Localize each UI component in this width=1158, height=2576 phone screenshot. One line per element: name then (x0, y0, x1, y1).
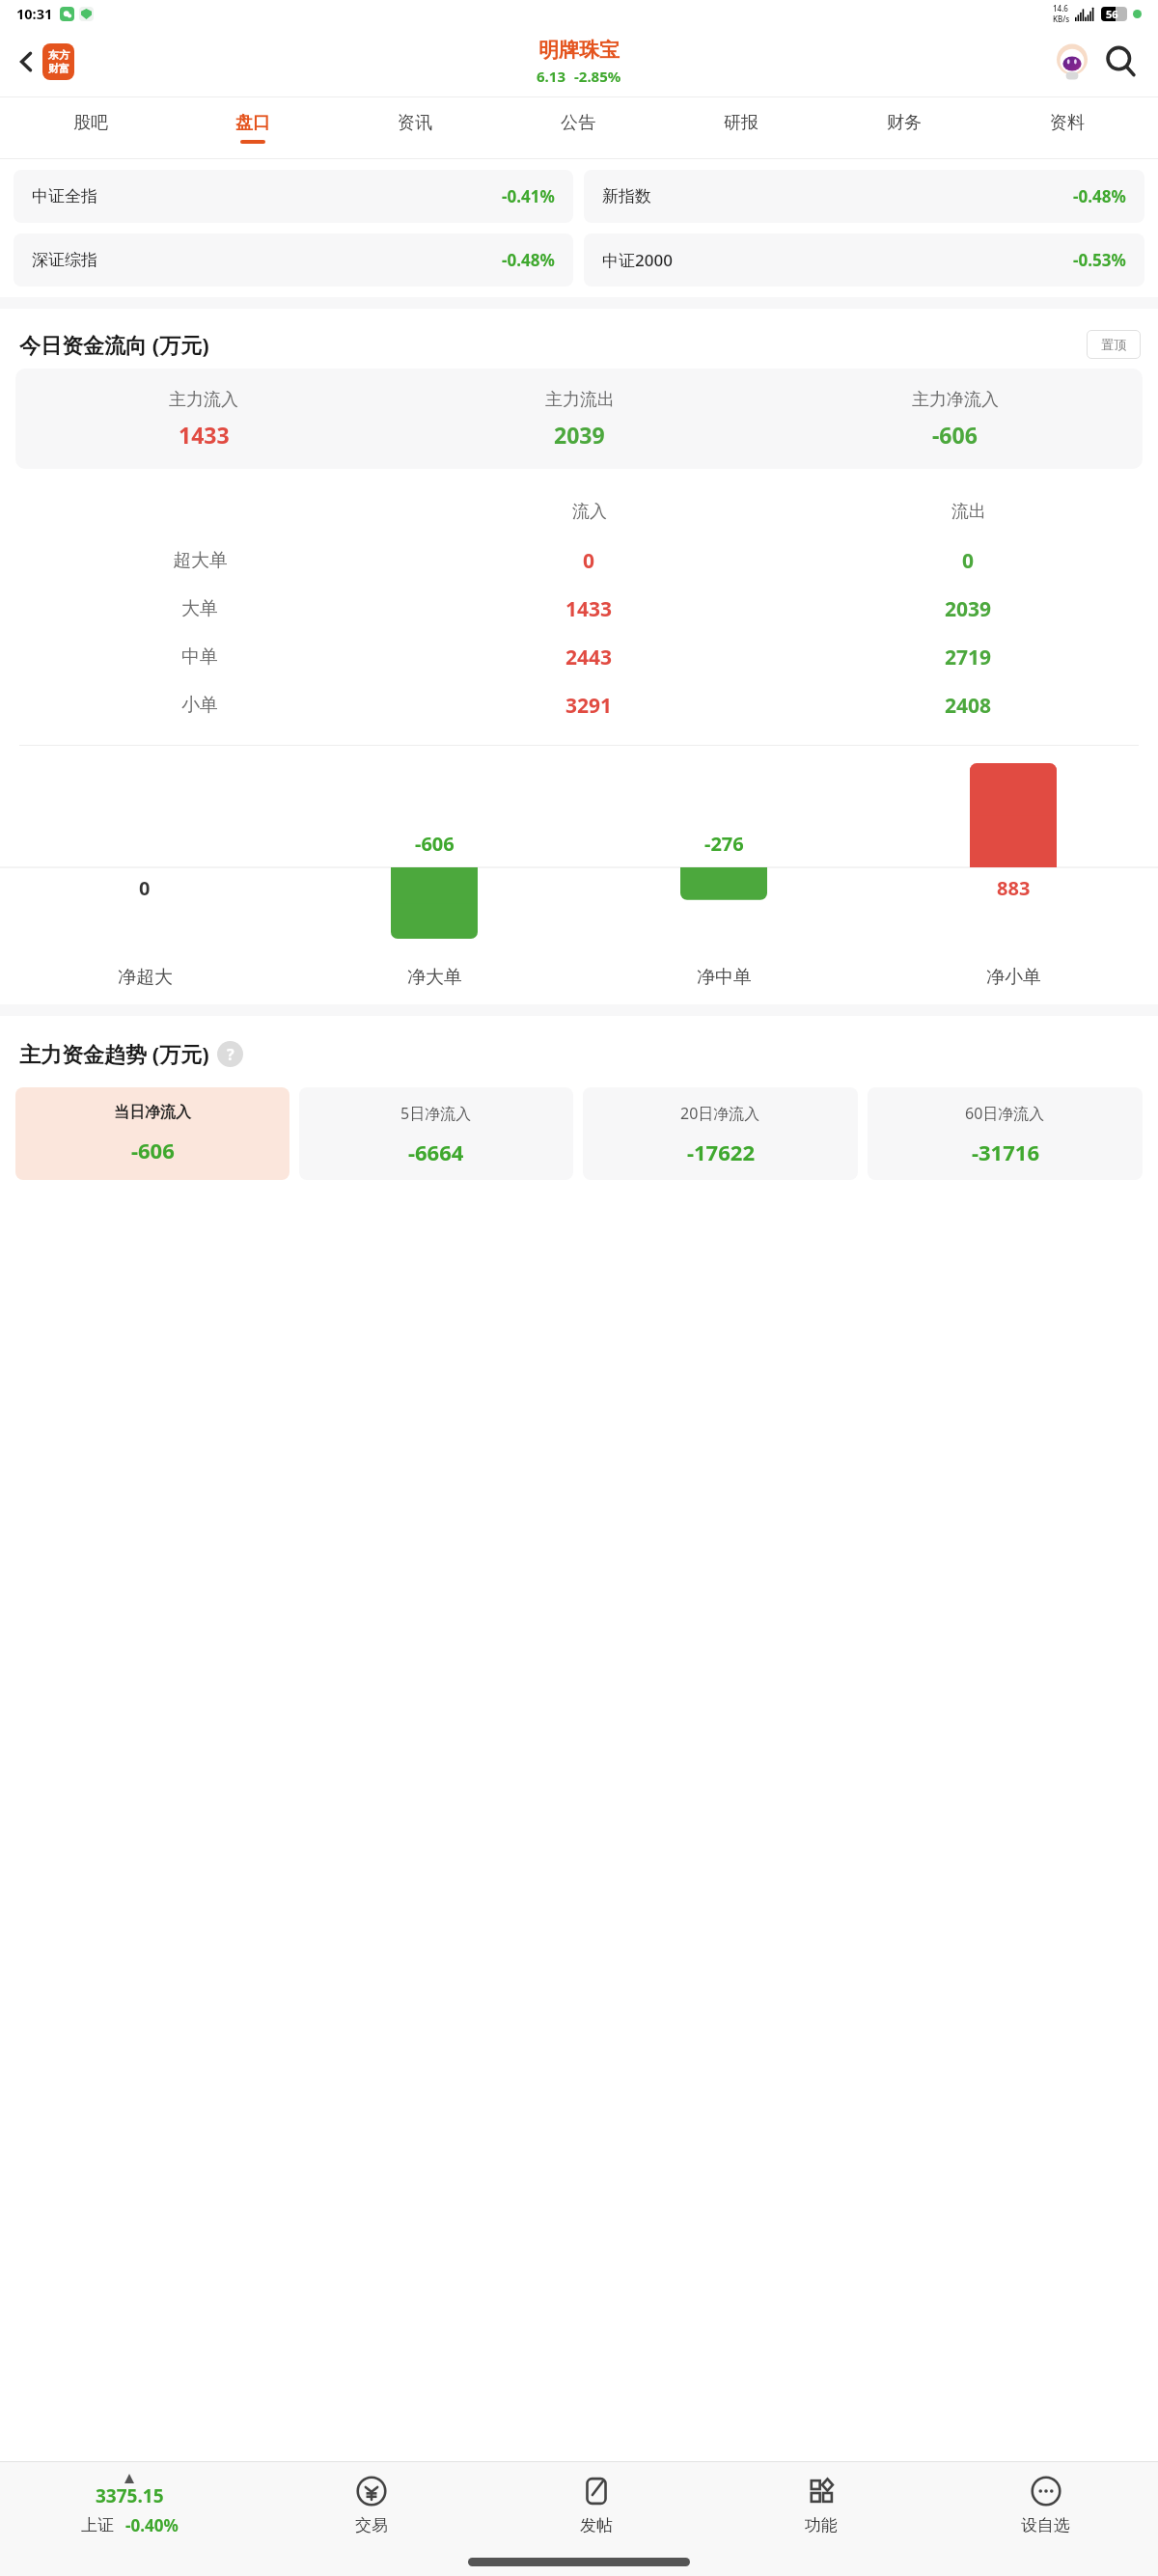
staticText: 新指数 (602, 186, 651, 206)
staticText: -31716 (972, 1137, 1039, 1166)
staticText: 东方 (48, 48, 69, 62)
staticText: 0 (139, 875, 151, 901)
button[interactable]: 资讯 (334, 97, 496, 158)
button[interactable]: Help (217, 1041, 243, 1067)
staticText: 公告 (561, 112, 595, 134)
staticText: 2039 (945, 595, 992, 623)
button[interactable]: 设自选 (933, 2462, 1158, 2547)
staticText: 主力资金趋势 (万元) (19, 1039, 209, 1068)
button[interactable]: 功能 (708, 2462, 933, 2547)
staticText: 2039 (554, 420, 605, 450)
staticText: 2443 (565, 644, 613, 671)
staticText: 6.13 (537, 67, 565, 86)
button[interactable]: 研报 (659, 97, 822, 158)
staticText: 0 (583, 547, 595, 575)
button[interactable]: East Money (42, 43, 74, 80)
staticText: 20日净流入 (680, 1103, 760, 1124)
staticText: 60日净流入 (965, 1103, 1045, 1124)
staticText: KB/s (1053, 14, 1070, 24)
button[interactable]: 当日净流入 (15, 1087, 289, 1180)
staticText: -2.85% (574, 67, 621, 86)
staticText: 中单 (181, 645, 218, 669)
staticText: 2408 (945, 692, 992, 720)
staticText: 1433 (179, 420, 230, 450)
staticText: 883 (997, 875, 1031, 901)
button[interactable]: 中证全指 (32, 170, 555, 223)
staticText: 56 (1106, 7, 1118, 21)
staticText: 资讯 (398, 112, 432, 134)
staticText: 上证 (81, 2515, 114, 2535)
staticText: 今日资金流向 (万元) (19, 330, 209, 359)
staticText: 发帖 (580, 2515, 613, 2535)
button[interactable]: 主力流入 (15, 369, 1143, 469)
staticText: 流入 (572, 501, 607, 523)
staticText: 中证2000 (602, 249, 673, 271)
staticText: 0 (962, 547, 975, 575)
staticText: -0.41% (502, 185, 555, 207)
staticText: 中证全指 (32, 186, 97, 206)
button[interactable]: 股吧 (10, 97, 172, 158)
button[interactable]: AI Assistant (1050, 40, 1094, 84)
button[interactable]: Search (1098, 39, 1144, 85)
staticText: 流出 (951, 501, 986, 523)
button[interactable]: 置顶 (1087, 330, 1141, 359)
staticText: 研报 (724, 112, 758, 134)
button[interactable]: 交易 (259, 2462, 483, 2547)
button[interactable]: Back (6, 41, 48, 83)
staticText: 当日净流入 (114, 1103, 191, 1122)
staticText: -606 (415, 831, 455, 857)
staticText: 功能 (805, 2515, 838, 2535)
staticText: -0.48% (1073, 185, 1126, 207)
staticText: 净小单 (986, 966, 1041, 989)
staticText: 超大单 (173, 549, 228, 572)
button[interactable]: 大单 (0, 585, 1158, 633)
button[interactable]: 3375.15 (0, 2462, 259, 2547)
staticText: 交易 (355, 2515, 388, 2535)
button[interactable]: 5日净流入 (299, 1087, 573, 1180)
staticText: 主力净流入 (912, 389, 999, 411)
button[interactable]: 资料 (985, 97, 1148, 158)
button[interactable]: 深证综指 (32, 233, 555, 287)
staticText: -0.40% (125, 2514, 179, 2536)
staticText: 2719 (945, 644, 992, 671)
staticText: -0.53% (1073, 249, 1126, 271)
staticText: 主力流入 (169, 389, 238, 411)
staticText: -6664 (408, 1137, 464, 1166)
staticText: 盘口 (235, 112, 270, 134)
button[interactable]: 发帖 (483, 2462, 708, 2547)
staticText: -276 (704, 831, 744, 857)
button[interactable]: 新指数 (602, 170, 1126, 223)
staticText: 主力流出 (545, 389, 615, 411)
button[interactable]: 超大单 (0, 536, 1158, 585)
button[interactable]: 中单 (0, 633, 1158, 681)
staticText: 大单 (181, 597, 218, 620)
staticText: 财务 (887, 112, 922, 134)
staticText: 净中单 (697, 966, 752, 989)
staticText: 3375.15 (96, 2483, 164, 2508)
staticText: 10:31 (16, 4, 53, 23)
staticText: 设自选 (1021, 2515, 1070, 2535)
staticText: 明牌珠宝 (538, 38, 620, 63)
staticText: 净超大 (118, 966, 173, 989)
button[interactable]: 中证2000 (602, 233, 1126, 287)
staticText: -606 (131, 1136, 175, 1165)
staticText: -0.48% (502, 249, 555, 271)
button[interactable]: 小单 (0, 681, 1158, 729)
staticText: ? (227, 1044, 234, 1065)
staticText: 1433 (565, 595, 613, 623)
button[interactable]: 60日净流入 (868, 1087, 1143, 1180)
staticText: 股吧 (73, 112, 108, 134)
button[interactable]: 公告 (496, 97, 659, 158)
staticText: 净大单 (407, 966, 462, 989)
staticText: 5日净流入 (400, 1103, 472, 1124)
button[interactable]: 盘口 (172, 97, 334, 158)
staticText: 资料 (1050, 112, 1085, 134)
staticText: 置顶 (1101, 337, 1126, 352)
staticText: 财富 (48, 62, 69, 75)
staticText: 14.6 (1053, 3, 1068, 14)
staticText: 小单 (181, 694, 218, 717)
button[interactable]: 财务 (822, 97, 985, 158)
staticText: -606 (932, 420, 978, 450)
staticText: 深证综指 (32, 250, 97, 270)
button[interactable]: 20日净流入 (583, 1087, 858, 1180)
